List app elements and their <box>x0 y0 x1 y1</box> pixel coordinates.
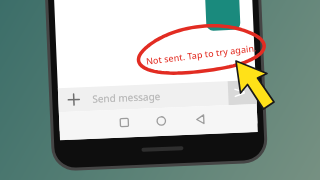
button[interactable]: Message not sent, tap to try again <box>0 0 320 180</box>
